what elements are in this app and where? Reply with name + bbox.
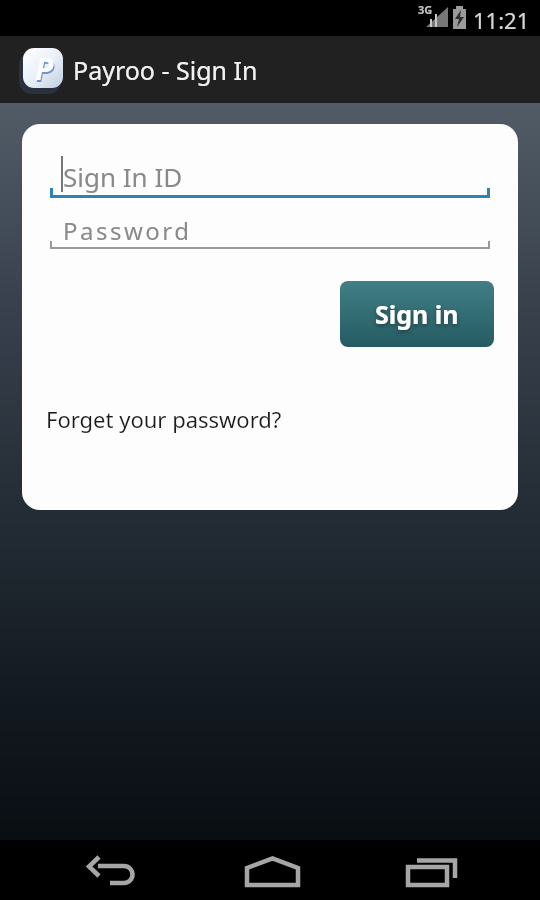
staticText: 3G	[418, 2, 433, 17]
button[interactable]: Forget your password?	[46, 404, 282, 434]
staticText: P	[36, 50, 55, 88]
staticText: P	[35, 48, 54, 88]
staticText: Payroo - Sign In	[73, 53, 258, 87]
button[interactable]	[180, 840, 360, 900]
button[interactable]: Password	[50, 204, 490, 249]
button[interactable]	[0, 840, 180, 900]
staticText: 11:21	[473, 5, 530, 35]
staticText: Password	[63, 214, 192, 247]
button[interactable]: Sign in	[340, 281, 494, 347]
staticText: Sign In ID	[63, 159, 183, 194]
staticText: Sign in	[375, 297, 459, 331]
button[interactable]	[360, 840, 540, 900]
button[interactable]: Sign In ID	[50, 142, 490, 198]
